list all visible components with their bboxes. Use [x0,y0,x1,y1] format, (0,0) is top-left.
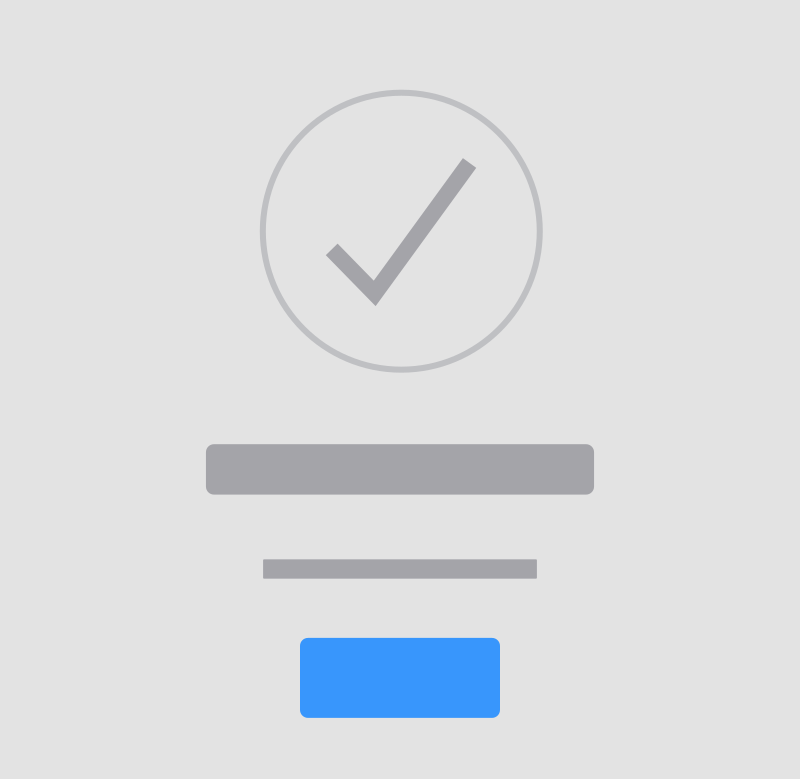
button[interactable]: Continue [300,638,500,718]
